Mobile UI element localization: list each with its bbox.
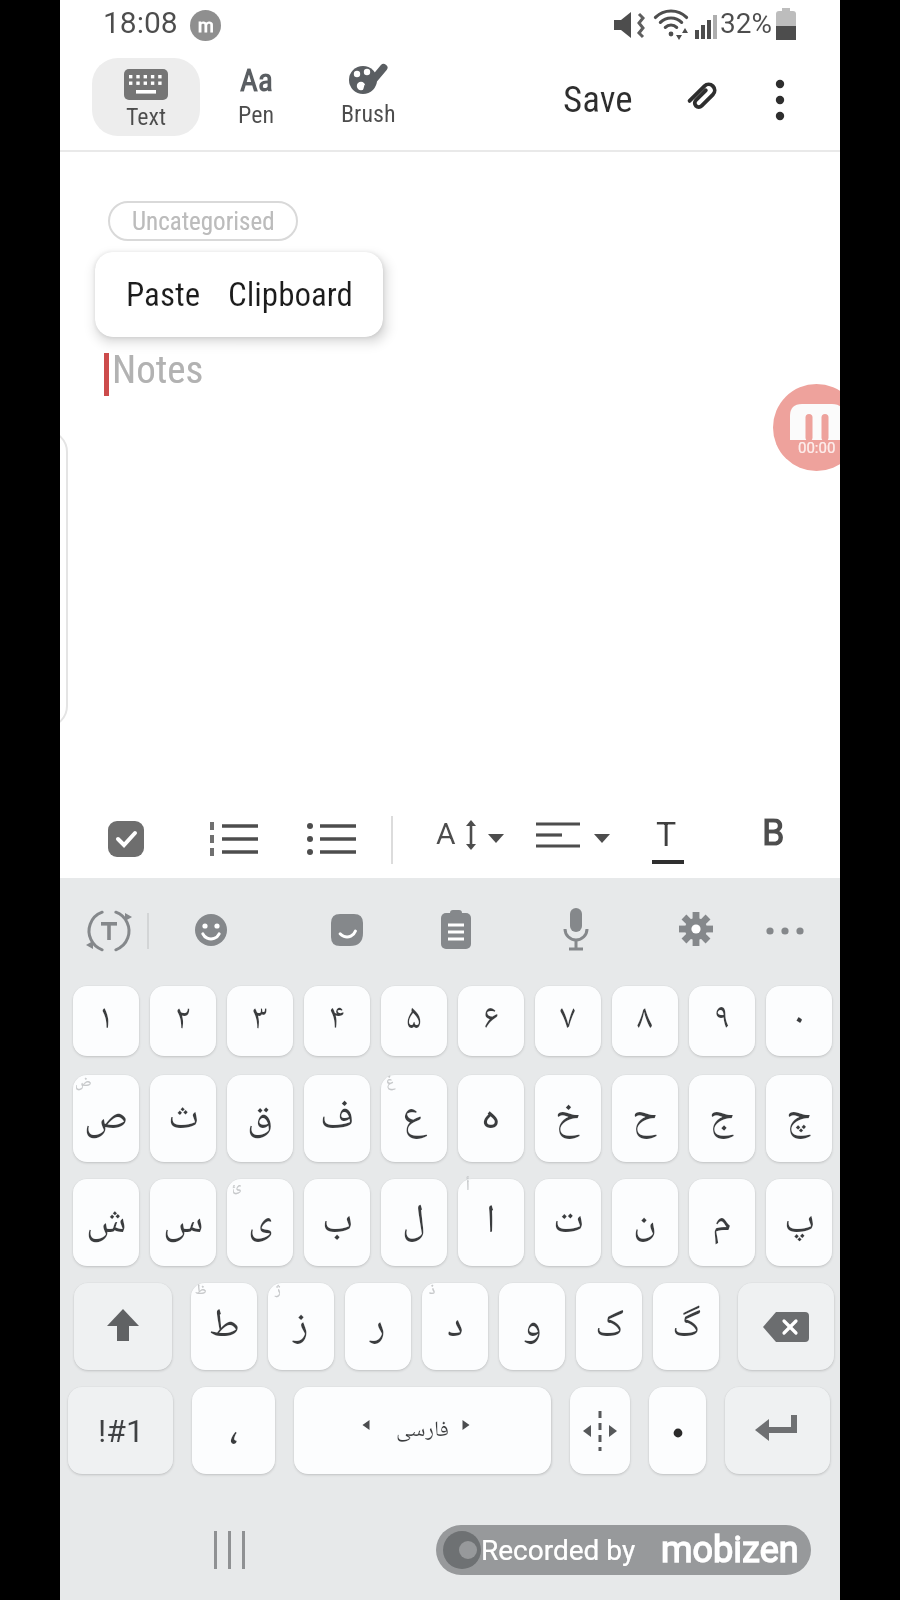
button[interactable]: ص xyxy=(73,1075,139,1162)
button[interactable]: ۸ xyxy=(612,986,678,1056)
staticText: ی xyxy=(248,1189,273,1257)
button[interactable]: ۶ xyxy=(458,986,524,1056)
staticText: B xyxy=(762,812,785,854)
button[interactable]: Brush xyxy=(322,62,414,134)
staticText: 32% xyxy=(720,7,772,40)
button[interactable]: Paste xyxy=(95,252,231,337)
button[interactable] xyxy=(570,1387,630,1474)
button[interactable]: پ xyxy=(766,1179,832,1266)
staticText: ل xyxy=(402,1189,426,1257)
button[interactable]: ۷ xyxy=(535,986,601,1056)
button[interactable]: ی xyxy=(227,1179,293,1266)
button[interactable]: Uncategorised xyxy=(108,201,298,241)
button[interactable] xyxy=(684,78,728,122)
staticText: ث xyxy=(168,1085,199,1153)
button[interactable] xyxy=(74,1283,172,1370)
button[interactable]: ق xyxy=(227,1075,293,1162)
staticText: ئ xyxy=(232,1174,242,1200)
staticText: 18:08 xyxy=(103,5,178,40)
button[interactable]: خ xyxy=(535,1075,601,1162)
button[interactable]: د xyxy=(422,1283,488,1370)
button[interactable]: س xyxy=(150,1179,216,1266)
button[interactable]: T xyxy=(648,812,694,868)
button[interactable]: ا xyxy=(458,1179,524,1266)
staticText: !#1 xyxy=(98,1412,144,1450)
button[interactable]: Text xyxy=(92,58,200,136)
button[interactable] xyxy=(208,820,260,860)
button[interactable]: ر xyxy=(345,1283,411,1370)
button[interactable]: A xyxy=(430,812,512,868)
button[interactable] xyxy=(738,1283,834,1370)
button[interactable]: Clipboard xyxy=(215,252,365,337)
staticText: چ xyxy=(786,1085,812,1153)
staticText: و xyxy=(523,1293,542,1361)
button[interactable] xyxy=(534,812,618,868)
staticText: A xyxy=(436,816,456,851)
staticText: خ xyxy=(555,1085,581,1153)
staticText: ن xyxy=(633,1189,657,1257)
button[interactable] xyxy=(194,913,230,949)
button[interactable] xyxy=(561,908,591,954)
button[interactable]: ۵ xyxy=(381,986,447,1056)
staticText: ا xyxy=(486,1189,496,1257)
staticText: ۱ xyxy=(98,991,114,1051)
staticText: ر xyxy=(370,1293,386,1361)
staticText: گ xyxy=(672,1293,701,1361)
staticText: Paste xyxy=(126,275,201,314)
button[interactable]: B xyxy=(756,810,802,868)
button[interactable] xyxy=(440,910,474,952)
button[interactable]: ف xyxy=(304,1075,370,1162)
button[interactable] xyxy=(306,820,358,860)
button[interactable]: Save xyxy=(563,78,633,121)
button[interactable] xyxy=(762,72,798,128)
staticText: أ xyxy=(466,1174,470,1200)
button[interactable]: 00:00 xyxy=(773,384,860,471)
staticText: د xyxy=(447,1293,464,1361)
button[interactable]: !#1 xyxy=(68,1387,173,1474)
button[interactable]: ع xyxy=(381,1075,447,1162)
staticText: ۲ xyxy=(175,991,191,1051)
button[interactable]: ج xyxy=(689,1075,755,1162)
button[interactable]: ه xyxy=(458,1075,524,1162)
button[interactable]: ۲ xyxy=(150,986,216,1056)
button[interactable]: ب xyxy=(304,1179,370,1266)
staticText: ذ xyxy=(429,1278,436,1304)
button[interactable]: ت xyxy=(535,1179,601,1266)
button[interactable]: ۴ xyxy=(304,986,370,1056)
button[interactable]: ک xyxy=(576,1283,642,1370)
staticText: Save xyxy=(563,78,633,121)
button[interactable]: ۰ xyxy=(766,986,832,1056)
button[interactable]: ش xyxy=(73,1179,139,1266)
button[interactable] xyxy=(330,913,366,949)
button[interactable]: ۱ xyxy=(73,986,139,1056)
button[interactable] xyxy=(85,907,133,955)
button[interactable]: ح xyxy=(612,1075,678,1162)
staticText: ۳ xyxy=(252,991,268,1051)
button[interactable] xyxy=(108,821,146,859)
button[interactable]: ، xyxy=(192,1387,275,1474)
button[interactable]: Aa xyxy=(212,62,300,134)
button[interactable] xyxy=(649,1387,706,1474)
button[interactable]: ث xyxy=(150,1075,216,1162)
staticText: س xyxy=(163,1189,204,1257)
button[interactable]: ز xyxy=(268,1283,334,1370)
button[interactable] xyxy=(725,1387,830,1474)
button[interactable]: گ xyxy=(653,1283,719,1370)
button[interactable]: چ xyxy=(766,1075,832,1162)
button[interactable]: ن xyxy=(612,1179,678,1266)
button[interactable]: ۳ xyxy=(227,986,293,1056)
button[interactable] xyxy=(679,912,715,950)
button[interactable]: و xyxy=(499,1283,565,1370)
staticText: Text xyxy=(126,103,167,131)
staticText: ژ xyxy=(275,1278,281,1304)
staticText: ب xyxy=(322,1189,353,1257)
button[interactable]: فارسی xyxy=(294,1387,551,1474)
staticText: غ xyxy=(386,1070,396,1096)
button[interactable]: م xyxy=(689,1179,755,1266)
button[interactable]: ل xyxy=(381,1179,447,1266)
button[interactable]: ۹ xyxy=(689,986,755,1056)
button[interactable]: ط xyxy=(191,1283,257,1370)
staticText: ۷ xyxy=(560,991,576,1051)
staticText: ظ xyxy=(195,1278,207,1304)
button[interactable] xyxy=(764,922,808,940)
